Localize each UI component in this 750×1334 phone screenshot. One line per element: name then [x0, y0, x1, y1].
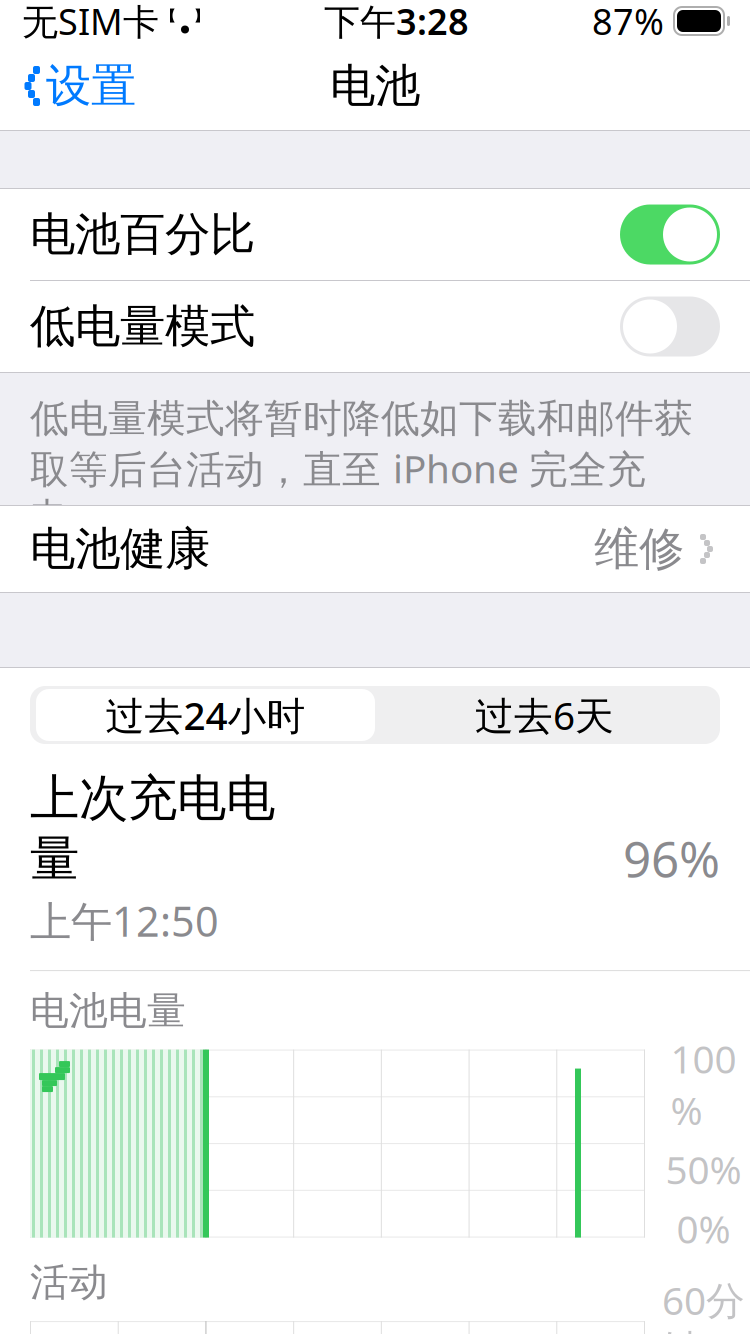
button[interactable]: 电池健康 — [0, 506, 750, 592]
staticText: 电池百分比 — [30, 207, 255, 262]
staticText: 维修 — [594, 521, 684, 577]
staticText: 上次充电电量 — [30, 768, 275, 889]
staticText: 低电量模式将暂时降低如下载和邮件获取等后台活动，直至 iPhone 完全充电。 — [30, 395, 693, 541]
staticText: 电池电量 — [30, 987, 186, 1035]
button[interactable]: 过去24小时 — [36, 689, 375, 741]
staticText: 无SIM卡 — [22, 0, 159, 45]
staticText: 60分钟 — [662, 1274, 745, 1334]
staticText: 活动 — [30, 1259, 108, 1306]
staticText: 0% — [676, 1203, 730, 1254]
staticText: 过去24小时 — [105, 689, 305, 741]
button[interactable]: 低电量模式 — [0, 281, 750, 372]
staticText: 100% — [670, 1033, 736, 1136]
staticText: 96% — [623, 825, 720, 891]
staticText: 过去6天 — [475, 689, 614, 741]
staticText: 电池 — [330, 58, 420, 114]
staticText: 电池健康 — [30, 521, 210, 577]
staticText: 87% — [592, 0, 664, 45]
button[interactable]: 过去6天 — [375, 689, 714, 741]
staticText: 设置 — [46, 58, 136, 114]
button[interactable]: 设置 — [0, 42, 150, 130]
staticText: 上午12:50 — [30, 893, 219, 948]
staticText: 低电量模式 — [30, 299, 255, 354]
button[interactable]: 电池百分比 — [0, 189, 750, 280]
staticText: 下午3:28 — [324, 0, 469, 45]
staticText: 50% — [665, 1144, 741, 1195]
